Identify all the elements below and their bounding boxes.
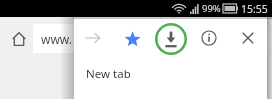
- button[interactable]: Download: [150, 19, 189, 56]
- button[interactable]: www.: [33, 24, 268, 53]
- button[interactable]: Download complete: [155, 23, 187, 55]
- button[interactable]: Forward: [74, 19, 112, 56]
- button[interactable]: Close: [228, 19, 267, 56]
- button[interactable]: Bookmark: [112, 19, 150, 56]
- staticText: 99%: [202, 2, 221, 15]
- staticText: New tab: [86, 66, 131, 82]
- staticText: www.: [41, 31, 73, 47]
- button[interactable]: Home: [6, 26, 32, 52]
- button[interactable]: New tab: [74, 56, 267, 92]
- button[interactable]: Page info: [189, 19, 228, 56]
- staticText: 15:55: [241, 2, 268, 16]
